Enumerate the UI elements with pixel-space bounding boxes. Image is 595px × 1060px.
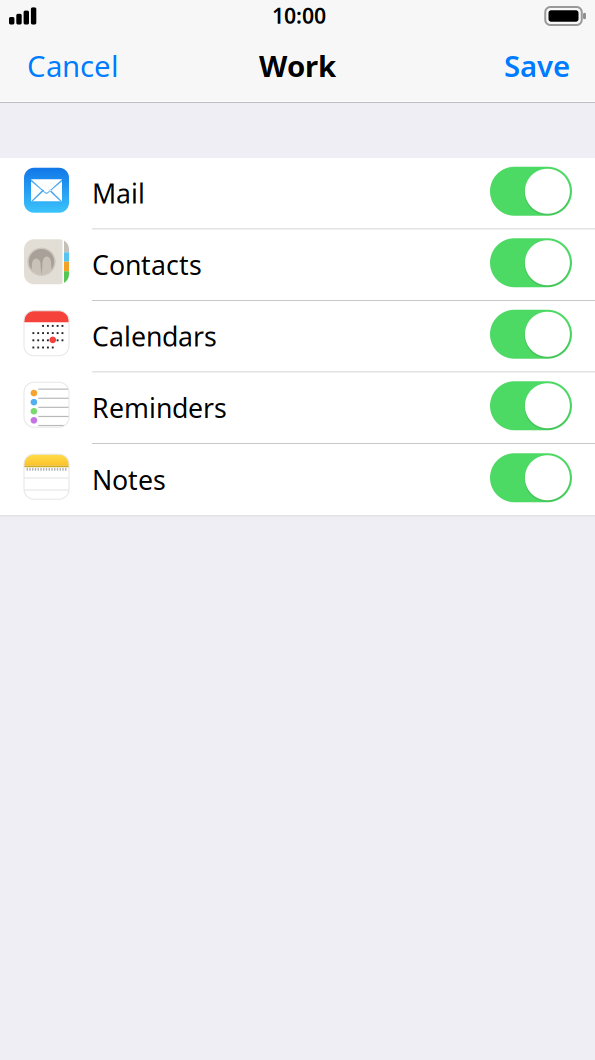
staticText: Work	[259, 46, 336, 85]
staticText: Reminders	[92, 390, 227, 425]
staticText: Calendars	[92, 318, 217, 354]
button[interactable]: Work	[259, 43, 336, 101]
button[interactable]: Cancel	[27, 43, 119, 101]
button[interactable]: Contacts	[0, 229, 595, 301]
button[interactable]: Calendars	[0, 301, 595, 372]
button[interactable]: Reminders	[0, 372, 595, 444]
staticText: Cancel	[27, 46, 119, 85]
button[interactable]: Save	[504, 43, 570, 101]
button[interactable]: Mail	[0, 158, 595, 229]
staticText: Contacts	[92, 247, 202, 282]
staticText: Notes	[92, 462, 166, 497]
button[interactable]: Notes	[0, 444, 595, 515]
staticText: Mail	[92, 175, 145, 211]
staticText: Save	[504, 46, 570, 85]
staticText: 10:00	[272, 1, 326, 30]
